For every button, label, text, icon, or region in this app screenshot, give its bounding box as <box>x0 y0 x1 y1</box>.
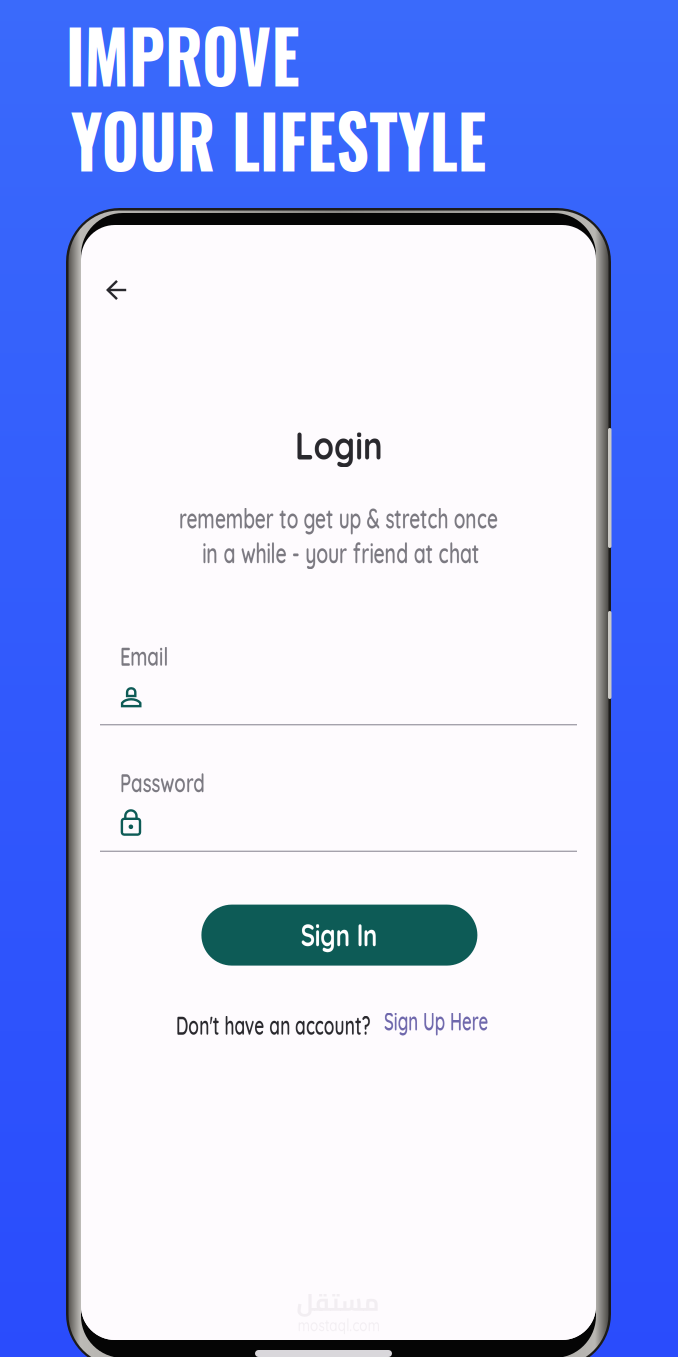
staticText: Email <box>120 640 186 672</box>
button[interactable]: Back <box>93 268 137 312</box>
staticText: remember to get up & stretch once <box>179 501 650 536</box>
staticText: YOUR LIFESTYLE <box>71 84 546 193</box>
button[interactable]: Sign Up Here <box>383 1008 543 1034</box>
staticText: in a while - your friend at chat <box>202 535 603 570</box>
staticText: Password <box>120 767 236 799</box>
staticText: Login <box>295 421 398 469</box>
button[interactable]: Sign In <box>201 905 477 966</box>
staticText: مستقل <box>296 1280 379 1325</box>
staticText: mostaql.com <box>298 1314 405 1335</box>
staticText: Don't have an account? <box>176 1009 462 1041</box>
staticText: IMPROVE <box>66 0 339 108</box>
staticText: Sign In <box>301 915 399 954</box>
staticText: Sign Up Here <box>384 1005 542 1037</box>
